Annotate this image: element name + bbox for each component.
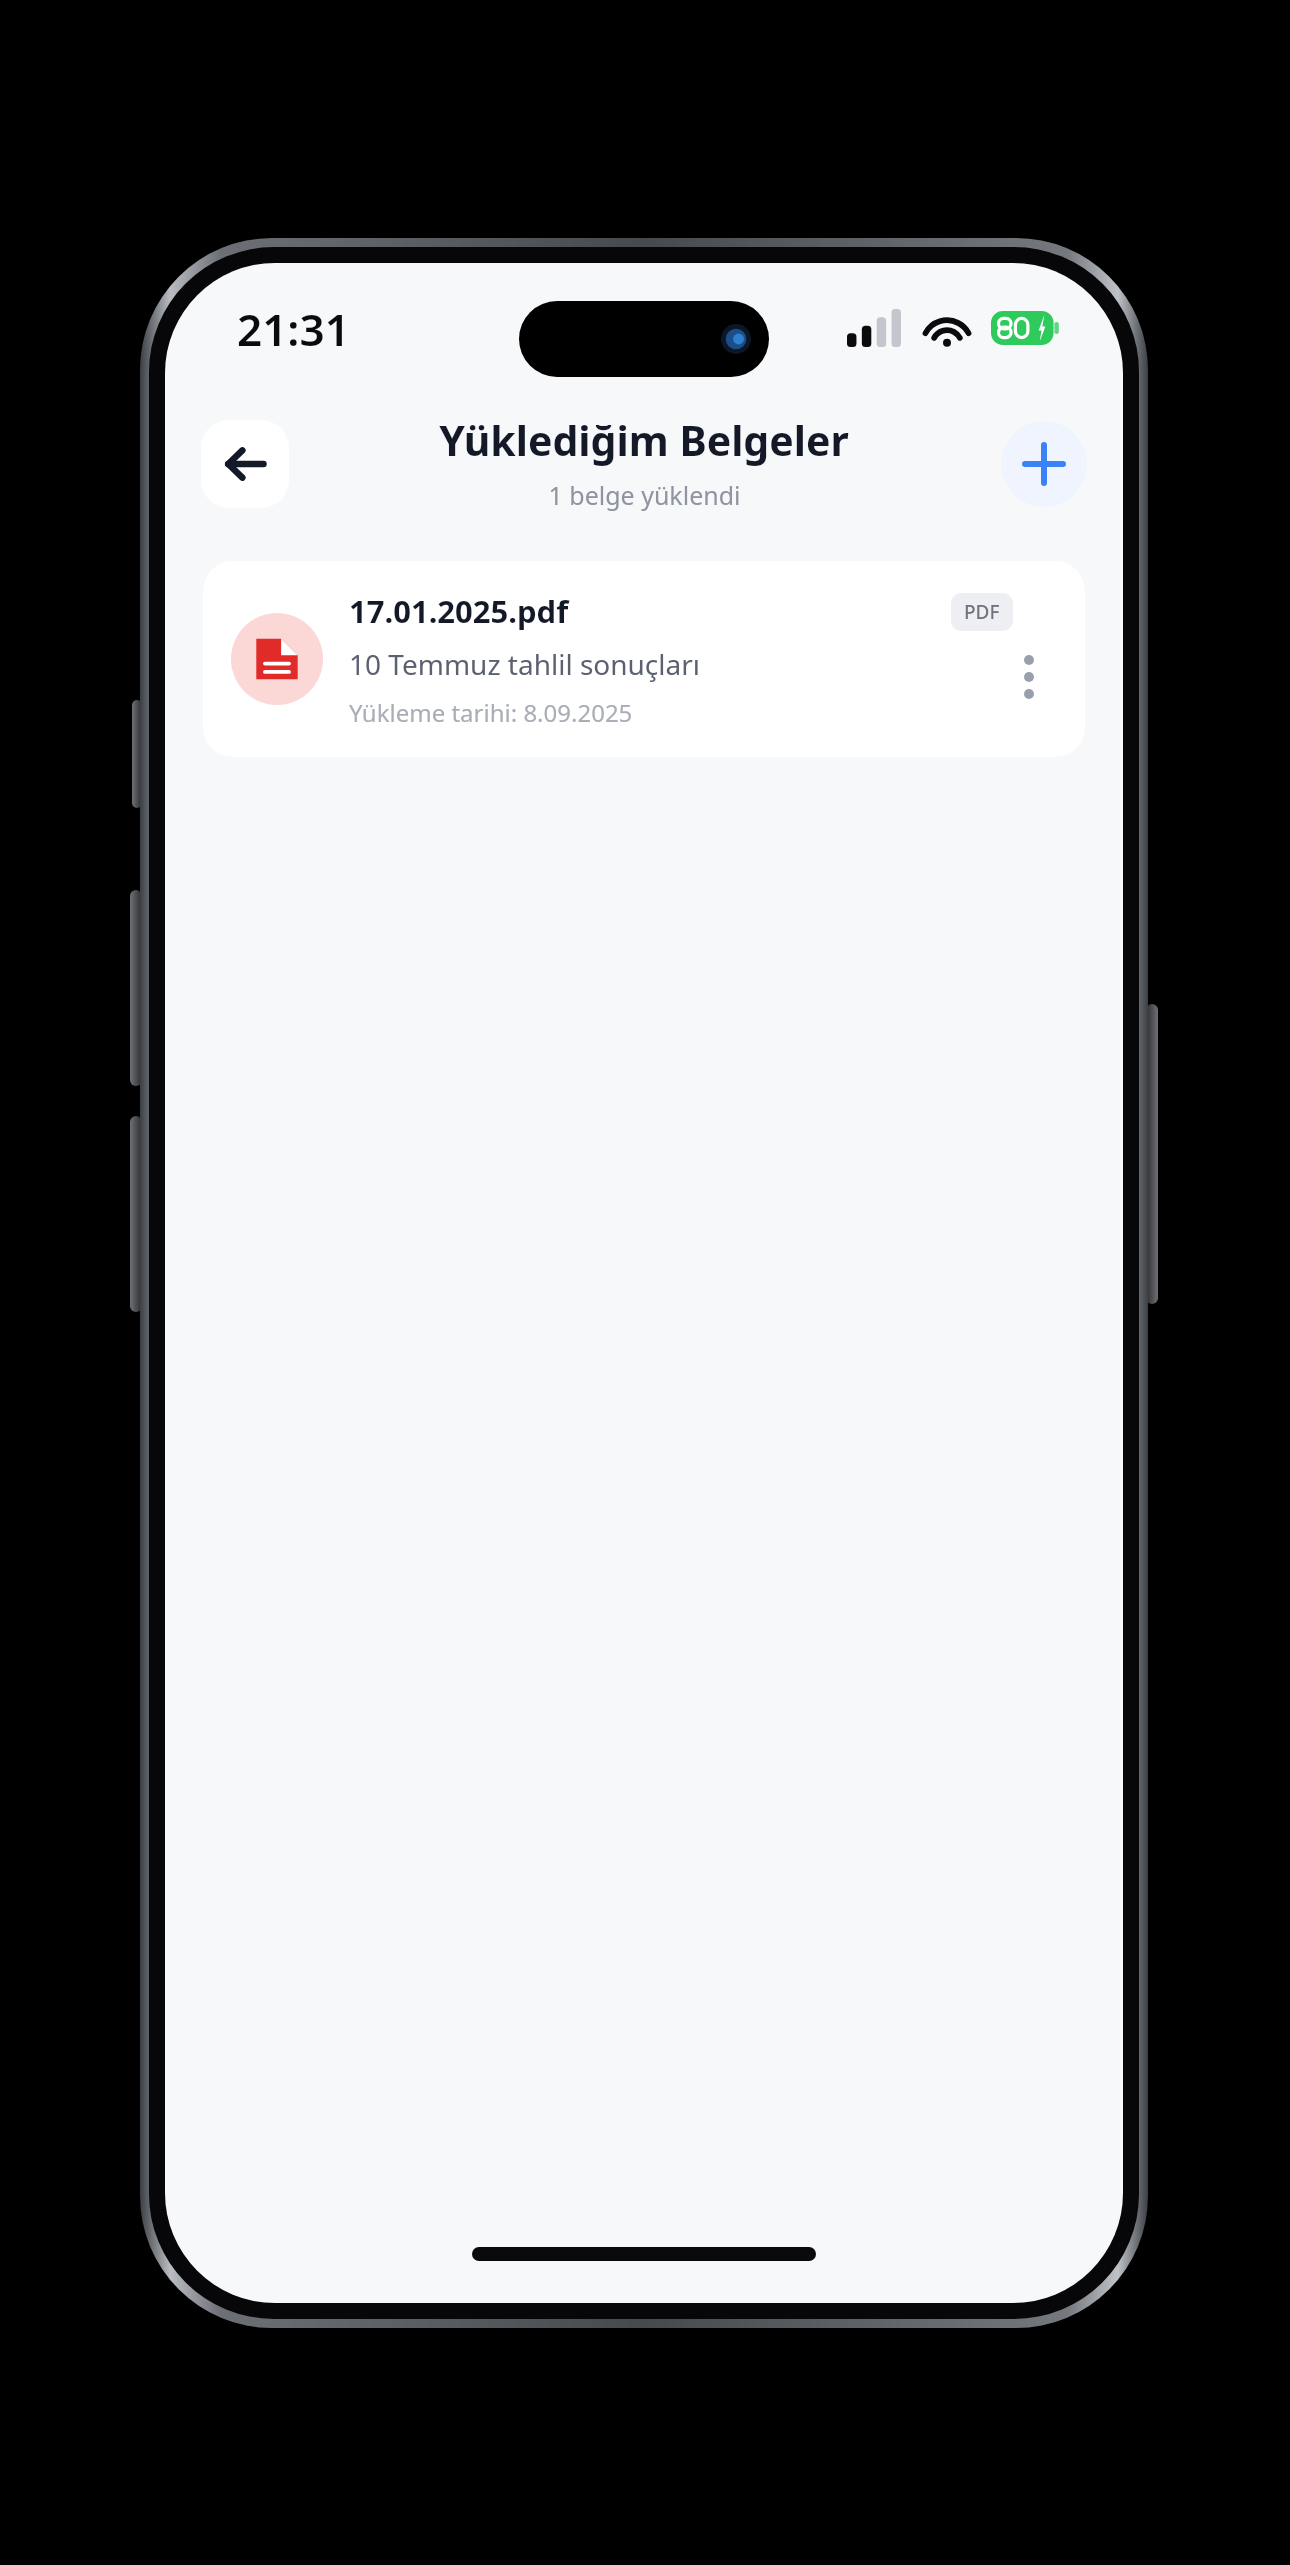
staticText: Yükleme tarihi: 8.09.2025 xyxy=(349,696,633,729)
staticText: 1 belge yüklendi xyxy=(548,478,741,512)
staticText: 10 Temmuz tahlil sonuçları xyxy=(349,645,701,683)
button[interactable]: Geri xyxy=(201,420,289,508)
staticText: Yüklediğim Belgeler xyxy=(439,412,849,468)
button[interactable]: 17.01.2025.pdf xyxy=(203,561,1085,757)
button[interactable]: Daha fazla seçenek xyxy=(1001,649,1057,705)
button[interactable]: Belge ekle xyxy=(1001,421,1087,507)
staticText: PDF xyxy=(964,599,1000,625)
staticText: 17.01.2025.pdf xyxy=(349,590,569,632)
staticText: 21:31 xyxy=(237,299,350,359)
